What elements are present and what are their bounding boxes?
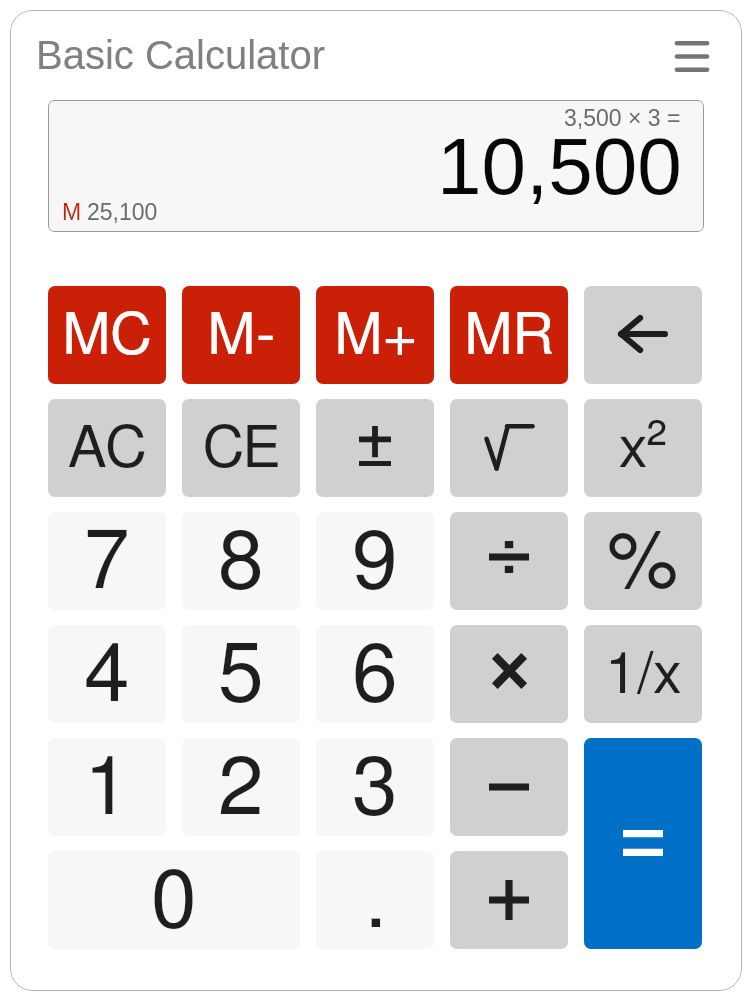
staticText: . — [365, 861, 386, 943]
button[interactable]: Plus minus — [316, 399, 434, 497]
button[interactable]: AC — [48, 399, 166, 497]
staticText: MR — [464, 308, 555, 366]
button[interactable]: 1/x — [584, 625, 702, 723]
staticText: M- — [207, 308, 276, 366]
staticText: 25,100 — [87, 199, 158, 225]
button[interactable]: MC — [48, 286, 166, 384]
button[interactable]: 5 — [182, 625, 300, 723]
button[interactable]: 0 — [48, 851, 300, 949]
button[interactable]: Multiply — [450, 625, 568, 723]
button[interactable]: 9 — [316, 512, 434, 610]
staticText: 7 — [84, 522, 130, 604]
button[interactable]: Plus — [450, 851, 568, 949]
button[interactable]: Equals — [584, 738, 702, 949]
button[interactable]: 4 — [48, 625, 166, 723]
button[interactable]: 6 — [316, 625, 434, 723]
button[interactable]: 7 — [48, 512, 166, 610]
staticText: 10,500 — [437, 122, 682, 211]
button[interactable]: M- — [182, 286, 300, 384]
button[interactable]: CE — [182, 399, 300, 497]
button[interactable]: 3 — [316, 738, 434, 836]
staticText: 2 — [218, 748, 264, 830]
staticText: 0 — [151, 861, 197, 943]
button[interactable]: x² — [584, 399, 702, 497]
button[interactable]: % — [584, 512, 702, 610]
button[interactable]: M+ — [316, 286, 434, 384]
staticText: M — [62, 199, 82, 225]
button[interactable]: MR — [450, 286, 568, 384]
button[interactable]: . — [316, 851, 434, 949]
staticText: 8 — [218, 522, 264, 604]
button[interactable]: 2 — [182, 738, 300, 836]
button[interactable]: Divide — [450, 512, 568, 610]
staticText: 1/x — [605, 647, 681, 705]
staticText: 4 — [84, 635, 130, 717]
staticText: x² — [619, 421, 667, 479]
staticText: % — [607, 523, 679, 603]
staticText: 1 — [84, 748, 130, 830]
staticText: 3,500 × 3 = — [564, 105, 681, 131]
button[interactable]: Square root — [450, 399, 568, 497]
staticText: AC — [68, 421, 147, 479]
button[interactable]: Menu — [670, 34, 714, 78]
staticText: 6 — [352, 635, 398, 717]
staticText: M+ — [334, 308, 417, 366]
staticText: 5 — [218, 635, 264, 717]
staticText: CE — [203, 421, 280, 479]
staticText: 3 — [352, 748, 398, 830]
button[interactable]: 1 — [48, 738, 166, 836]
button[interactable]: Minus — [450, 738, 568, 836]
staticText: MC — [62, 308, 152, 366]
button[interactable]: Backspace — [584, 286, 702, 384]
staticText: Basic Calculator — [36, 33, 326, 78]
staticText: 9 — [352, 522, 398, 604]
button[interactable]: 8 — [182, 512, 300, 610]
